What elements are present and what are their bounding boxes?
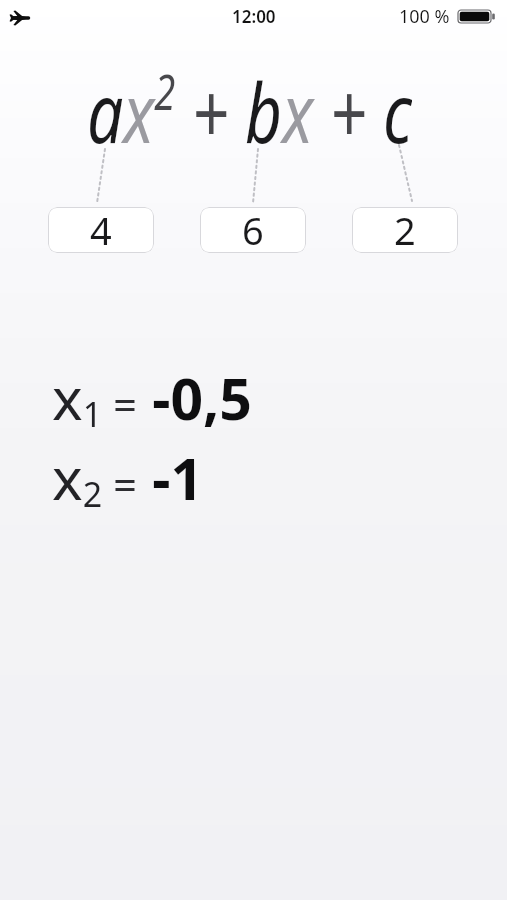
staticText: 100 % (399, 4, 450, 29)
staticText: 12:00 (232, 5, 276, 28)
staticText: 2 (394, 207, 416, 250)
button[interactable]: 2 (352, 207, 458, 253)
staticText: 6 (242, 207, 264, 250)
staticText: x1 = -0,5 (52, 358, 252, 437)
staticText: ax2 + bx + c (87, 56, 412, 158)
staticText: x2 = -1 (52, 438, 203, 517)
button[interactable]: 6 (200, 207, 306, 253)
button[interactable]: 4 (48, 207, 154, 253)
staticText: 4 (90, 207, 112, 250)
